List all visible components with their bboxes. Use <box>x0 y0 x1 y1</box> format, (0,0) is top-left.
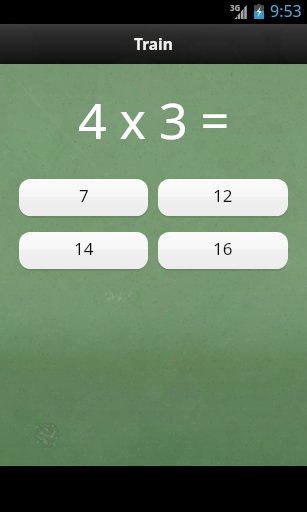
staticText: 9:53 <box>270 0 302 22</box>
staticText: 16 <box>213 237 233 260</box>
staticText: 14 <box>74 237 94 260</box>
other: Battery charging <box>253 3 265 20</box>
staticText: Train <box>134 33 173 54</box>
other: Mobile signal 3G <box>229 3 248 20</box>
button[interactable]: 14 <box>19 232 148 269</box>
staticText: 3G <box>230 2 241 13</box>
staticText: 12 <box>213 184 233 207</box>
button[interactable]: 7 <box>19 179 148 216</box>
staticText: 7 <box>79 184 89 207</box>
button[interactable]: 16 <box>158 232 288 269</box>
staticText: 4 x 3 = <box>0 86 307 154</box>
button[interactable]: 12 <box>158 179 288 216</box>
